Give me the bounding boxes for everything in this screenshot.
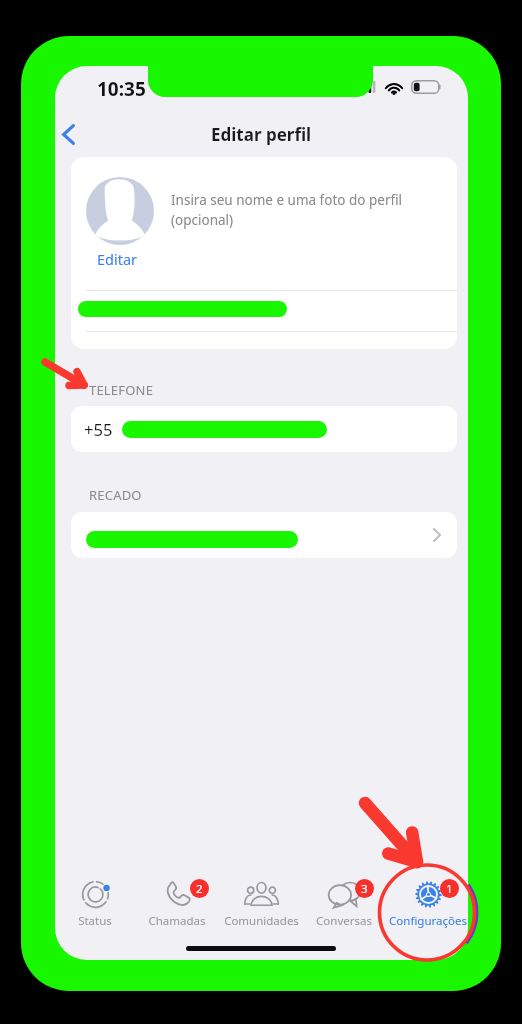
staticText: 2 <box>196 881 203 897</box>
staticText: Editar perfil <box>211 123 312 146</box>
staticText: Chamadas <box>148 913 206 929</box>
button[interactable]: Status <box>55 870 136 928</box>
staticText: Insira seu nome e uma foto do perfil (op… <box>171 191 403 229</box>
staticText: 3 <box>361 881 368 897</box>
button[interactable]: 3 <box>303 870 385 928</box>
staticText: Editar <box>97 249 138 269</box>
staticText: 10:35 <box>97 76 146 102</box>
staticText: Conversas <box>316 913 372 929</box>
staticText: Status <box>78 913 112 929</box>
staticText: +55 <box>84 418 113 440</box>
button[interactable]: +55 <box>71 406 457 452</box>
staticText: Comunidades <box>224 913 299 929</box>
button[interactable] <box>71 512 457 558</box>
button[interactable]: Voltar <box>55 112 99 156</box>
button[interactable]: Comunidades <box>220 870 302 928</box>
staticText: RECADO <box>89 486 142 504</box>
button[interactable]: 1 <box>387 870 468 928</box>
staticText: TELEFONE <box>89 381 154 399</box>
button[interactable]: 2 <box>136 870 218 928</box>
staticText: Configurações <box>389 913 467 929</box>
button[interactable]: Editar <box>84 249 151 269</box>
staticText: 1 <box>446 881 453 897</box>
